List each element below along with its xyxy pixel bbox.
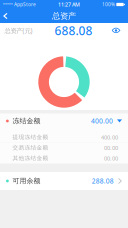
staticText: 00.00 [104, 144, 118, 151]
staticText: 288.08 [92, 176, 114, 186]
button[interactable]: 可用余额 [0, 172, 128, 190]
staticText: 00.00 [104, 154, 118, 162]
staticText: 400.00 [91, 116, 113, 126]
staticText: 其他冻结金额 [12, 155, 48, 162]
staticText: AppStore [14, 1, 36, 8]
button[interactable]: Back [0, 9, 11, 23]
staticText: 100% [102, 1, 115, 8]
staticText: 交易冻结金额 [12, 144, 48, 151]
staticText: 总资产 [52, 11, 76, 21]
button[interactable]: 冻结金额 [0, 113, 128, 132]
staticText: 可用余额 [13, 177, 41, 185]
button[interactable]: Hide balance [108, 24, 124, 37]
staticText: 冻结金额 [13, 117, 41, 125]
staticText: 11:27 AM [58, 1, 80, 8]
staticText: 提现冻结金额 [12, 134, 48, 141]
staticText: 400.00 [101, 133, 118, 141]
staticText: ••••• [3, 1, 13, 8]
staticText: 688.08 [54, 22, 92, 39]
staticText: 总资产(元) [4, 26, 32, 35]
